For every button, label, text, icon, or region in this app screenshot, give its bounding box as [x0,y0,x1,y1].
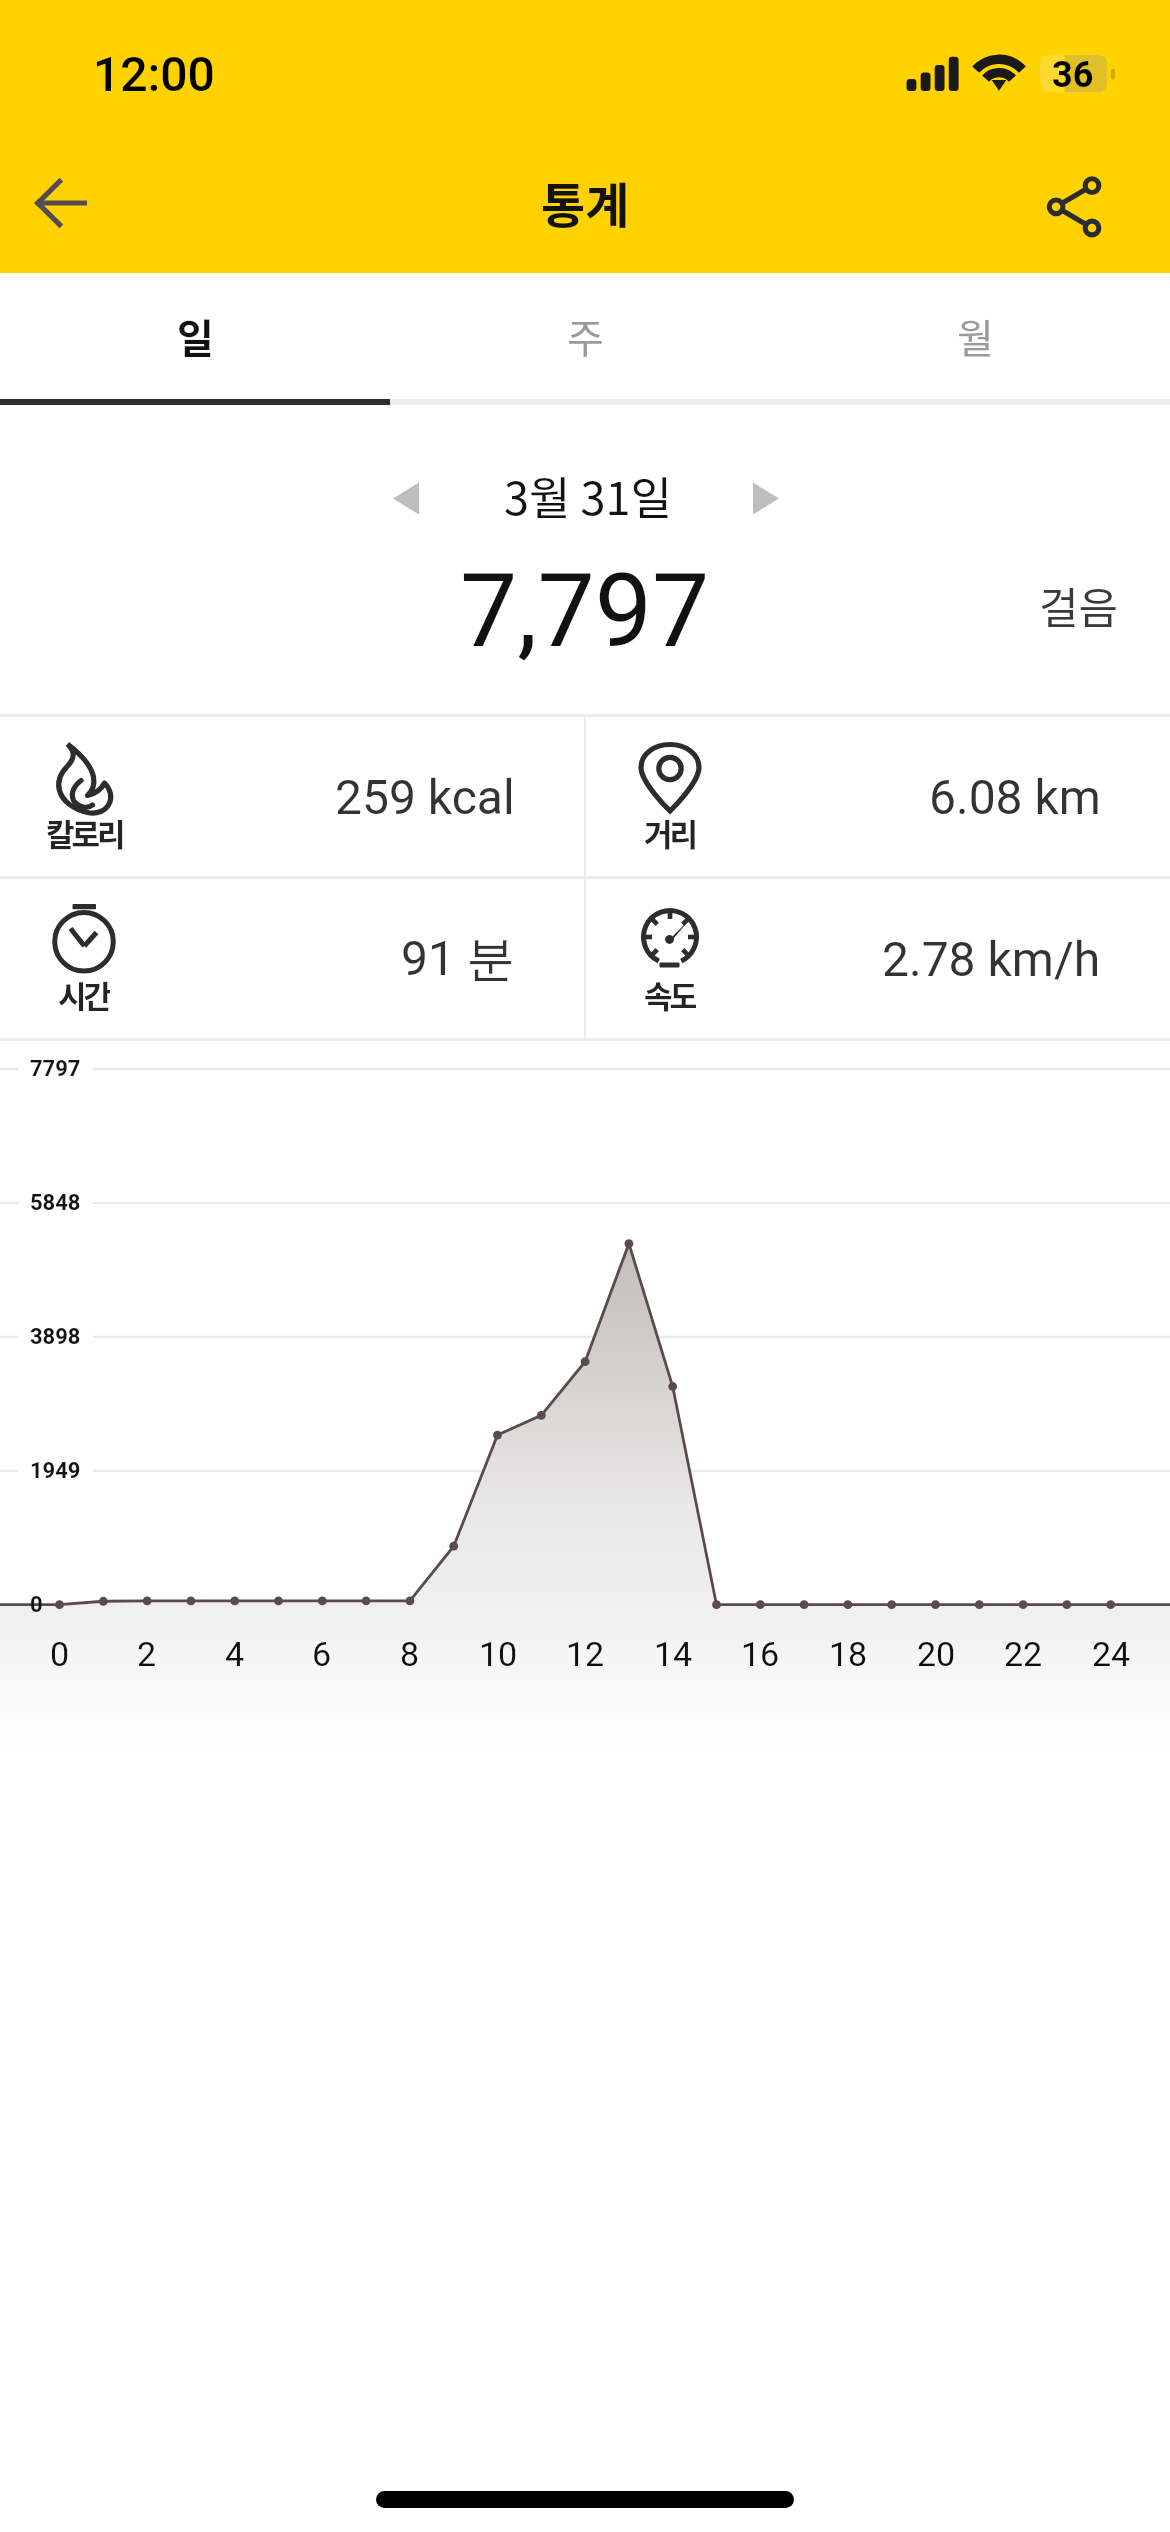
staticText: 7797 [30,1056,81,1082]
staticText: 통계 [541,167,630,233]
staticText: 91 분 [401,929,515,989]
button[interactable]: 시간 [0,879,584,1038]
staticText: 0 [30,1592,43,1618]
staticText: 8 [400,1634,420,1674]
button[interactable]: 속도 [586,879,1170,1038]
staticText: 일 [177,307,214,365]
staticText: 걸음 [1039,574,1119,634]
staticText: 22 [1004,1634,1043,1674]
staticText: 3월 31일 [504,463,672,523]
button[interactable]: Back [12,153,112,253]
staticText: 주 [567,307,604,365]
staticText: 1949 [30,1458,81,1484]
staticText: 20 [917,1634,956,1674]
staticText: 2.78 km/h [882,931,1101,987]
button[interactable]: Share [1026,155,1126,255]
staticText: 10 [479,1634,518,1674]
staticText: 시간 [58,972,110,1012]
staticText: 259 kcal [335,769,515,825]
staticText: 24 [1092,1634,1131,1674]
staticText: 36 [1052,54,1094,93]
staticText: 0 [50,1634,70,1674]
staticText: 거리 [644,810,696,850]
staticText: 18 [829,1634,868,1674]
staticText: 3898 [30,1324,81,1350]
button[interactable]: Previous day [376,463,438,523]
staticText: 6 [312,1634,332,1674]
button[interactable]: Next day [734,463,796,523]
button[interactable]: 일 [0,273,390,399]
staticText: 5848 [30,1190,81,1216]
staticText: 6.08 km [929,769,1101,825]
button[interactable]: 월 [780,273,1170,399]
staticText: 4 [225,1634,245,1674]
button[interactable]: 주 [390,273,780,399]
staticText: 칼로리 [46,810,123,850]
staticText: 월 [957,307,994,365]
staticText: 2 [137,1634,157,1674]
staticText: 14 [654,1634,693,1674]
button[interactable]: 거리 [586,717,1170,876]
staticText: 16 [741,1634,780,1674]
button[interactable]: 칼로리 [0,717,584,876]
staticText: 7,797 [460,551,710,671]
staticText: 12 [566,1634,605,1674]
staticText: 속도 [644,972,696,1012]
staticText: 12:00 [93,46,215,102]
